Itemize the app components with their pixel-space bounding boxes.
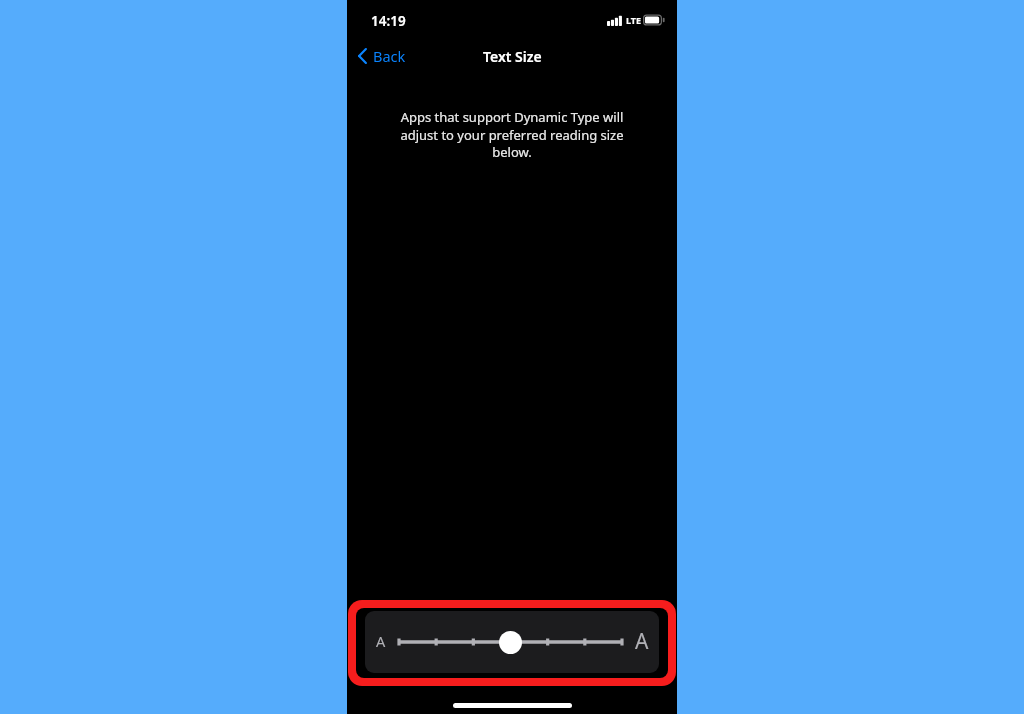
other: Battery nearly full xyxy=(643,14,665,26)
button[interactable]: Text size slider handle xyxy=(499,631,522,654)
staticText: 14:19 xyxy=(371,12,406,30)
button[interactable]: Back xyxy=(351,40,413,72)
staticText: A xyxy=(635,627,649,656)
staticText: A xyxy=(376,631,386,651)
staticText: Text Size xyxy=(483,47,542,66)
other: Cellular signal strength xyxy=(607,15,622,26)
staticText: Back xyxy=(373,46,406,66)
staticText: Apps that support Dynamic Type will adju… xyxy=(397,108,627,161)
staticText: LTE xyxy=(626,14,642,26)
button[interactable]: Preferred reading size slider xyxy=(365,611,659,673)
